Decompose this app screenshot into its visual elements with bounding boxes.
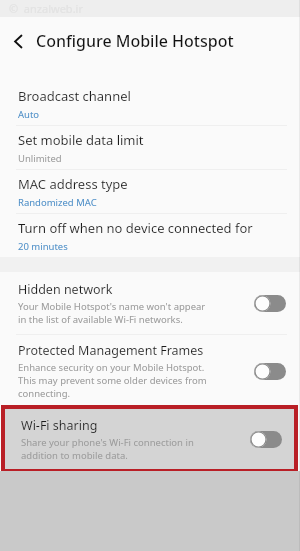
button[interactable]: Wi-Fi sharing — [3, 407, 296, 471]
button[interactable]: MAC address type — [0, 170, 300, 213]
staticText: Hidden network — [18, 281, 113, 298]
other: Protected Management Frames — [254, 363, 286, 380]
staticText: Randomized MAC — [18, 196, 97, 209]
other: Wi-Fi sharing — [250, 431, 282, 448]
button[interactable]: Turn off when no device connected for — [0, 214, 300, 257]
staticText: Protected Management Frames — [18, 342, 204, 359]
staticText: Wi-Fi sharing — [21, 417, 98, 434]
button[interactable]: Protected Management Frames — [0, 335, 300, 407]
staticText: Share your phone's Wi-Fi connection in a… — [21, 436, 194, 462]
staticText: Broadcast channel — [18, 87, 131, 105]
staticText: MAC address type — [18, 175, 128, 193]
staticText: Unlimited — [18, 152, 62, 165]
staticText: 20 minutes — [18, 240, 68, 253]
other: Hidden network — [254, 295, 286, 312]
staticText: Your Mobile Hotspot's name won't appear … — [18, 300, 206, 326]
staticText: Turn off when no device connected for — [18, 219, 253, 237]
staticText: Enhance security on your Mobile Hotspot.… — [18, 361, 207, 400]
button[interactable]: Back — [0, 23, 36, 59]
staticText: Configure Mobile Hotspot — [36, 30, 234, 52]
button[interactable]: Set mobile data limit — [0, 126, 300, 169]
button[interactable]: Hidden network — [0, 272, 300, 334]
staticText: Auto — [18, 108, 40, 121]
button[interactable]: Broadcast channel — [0, 83, 300, 125]
staticText: Set mobile data limit — [18, 131, 144, 149]
staticText: © anzalweb.ir — [9, 1, 83, 16]
